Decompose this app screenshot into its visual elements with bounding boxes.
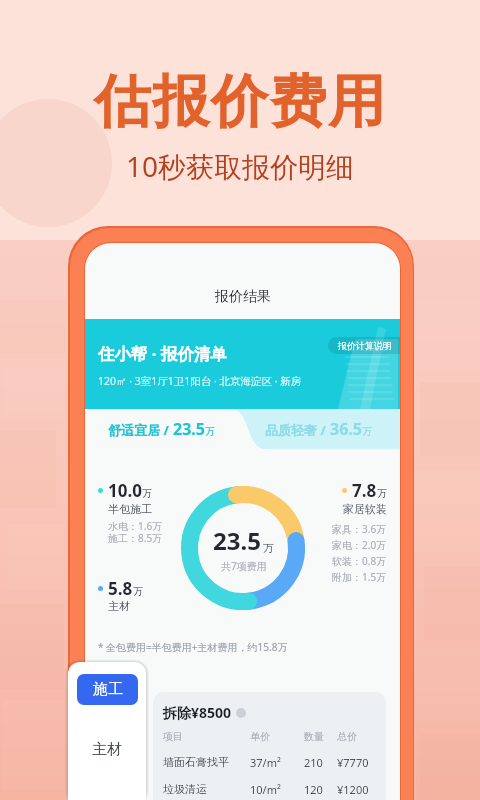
staticText: 主材 (108, 599, 130, 613)
button[interactable]: 报价计算说明 (328, 337, 400, 354)
staticText: 万 (362, 425, 372, 438)
button[interactable]: 舒适宜居 / (85, 409, 239, 451)
staticText: 报价结果 (215, 288, 271, 306)
staticText: 万 (263, 541, 274, 555)
staticText: 万 (205, 425, 215, 438)
staticText: 舒适宜居 / (108, 421, 173, 439)
staticText: 23.5 (173, 418, 205, 440)
staticText: ¥7770 (337, 755, 369, 770)
staticText: * 全包费用=半包费用+主材费用，约15.8万 (98, 640, 288, 654)
staticText: 23.5 (213, 524, 261, 557)
button[interactable]: 品质轻奢 / (239, 409, 399, 451)
staticText: 家具：3.6万 (332, 522, 387, 536)
staticText: 墙面石膏找平 (163, 755, 229, 769)
staticText: 36.5 (330, 418, 362, 440)
staticText: 垃圾清运 (163, 782, 207, 796)
staticText: 数量 (304, 730, 324, 743)
staticText: 37/m² (250, 755, 281, 770)
staticText: 家电：2.0万 (332, 538, 387, 552)
staticText: 水电：1.6万 (108, 519, 163, 533)
staticText: 万 (142, 487, 152, 500)
staticText: 共7项费用 (221, 559, 267, 573)
staticText: 10/m² (250, 782, 281, 797)
staticText: 附加：1.5万 (332, 570, 387, 584)
staticText: 施工 (93, 680, 123, 699)
staticText: 施工：8.5万 (108, 531, 163, 545)
staticText: 万 (133, 585, 143, 598)
staticText: 万 (377, 487, 387, 500)
staticText: 估报价费用 (94, 66, 387, 138)
staticText: 报价计算说明 (338, 340, 392, 351)
staticText: 总价 (337, 730, 357, 743)
staticText: 住小帮 · 报价清单 (98, 342, 227, 365)
staticText: 品质轻奢 / (265, 421, 330, 439)
staticText: 主材 (92, 740, 122, 759)
staticText: 半包施工 (108, 502, 152, 516)
staticText: 10.0 (108, 479, 142, 502)
staticText: 120 (304, 782, 323, 797)
staticText: 5.8 (108, 577, 133, 600)
staticText: 210 (304, 755, 323, 770)
staticText: 120㎡ · 3室1厅1卫1阳台 · 北京海淀区 · 新房 (98, 374, 302, 388)
staticText: 拆除¥8500 (163, 703, 232, 722)
button[interactable]: 施工 (77, 674, 138, 705)
staticText: 7.8 (352, 479, 377, 502)
button[interactable]: 主材 (68, 732, 146, 766)
staticText: 家居软装 (343, 502, 387, 516)
staticText: 项目 (163, 730, 183, 743)
staticText: ¥1200 (337, 782, 369, 797)
staticText: 单价 (250, 730, 270, 743)
staticText: 软装：0.8万 (332, 554, 387, 568)
staticText: 10秒获取报价明细 (126, 147, 355, 185)
